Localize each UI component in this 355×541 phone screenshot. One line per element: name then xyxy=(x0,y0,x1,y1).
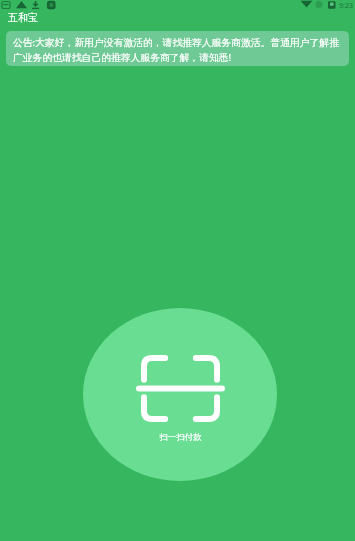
button[interactable]: 公告:大家好，新用户没有激活的，请找推荐人服务商激活。普通用户了解推广业务的也请… xyxy=(6,31,349,66)
button[interactable]: 五和宝 xyxy=(0,10,355,24)
staticText: 扫一扫付款 xyxy=(159,432,202,443)
staticText: 9:23 xyxy=(339,1,353,11)
staticText: 公告:大家好，新用户没有激活的，请找推荐人服务商激活。普通用户了解推广业务的也请… xyxy=(13,36,342,62)
button[interactable]: 扫一扫付款 xyxy=(83,308,277,481)
staticText: 五和宝 xyxy=(8,11,38,24)
